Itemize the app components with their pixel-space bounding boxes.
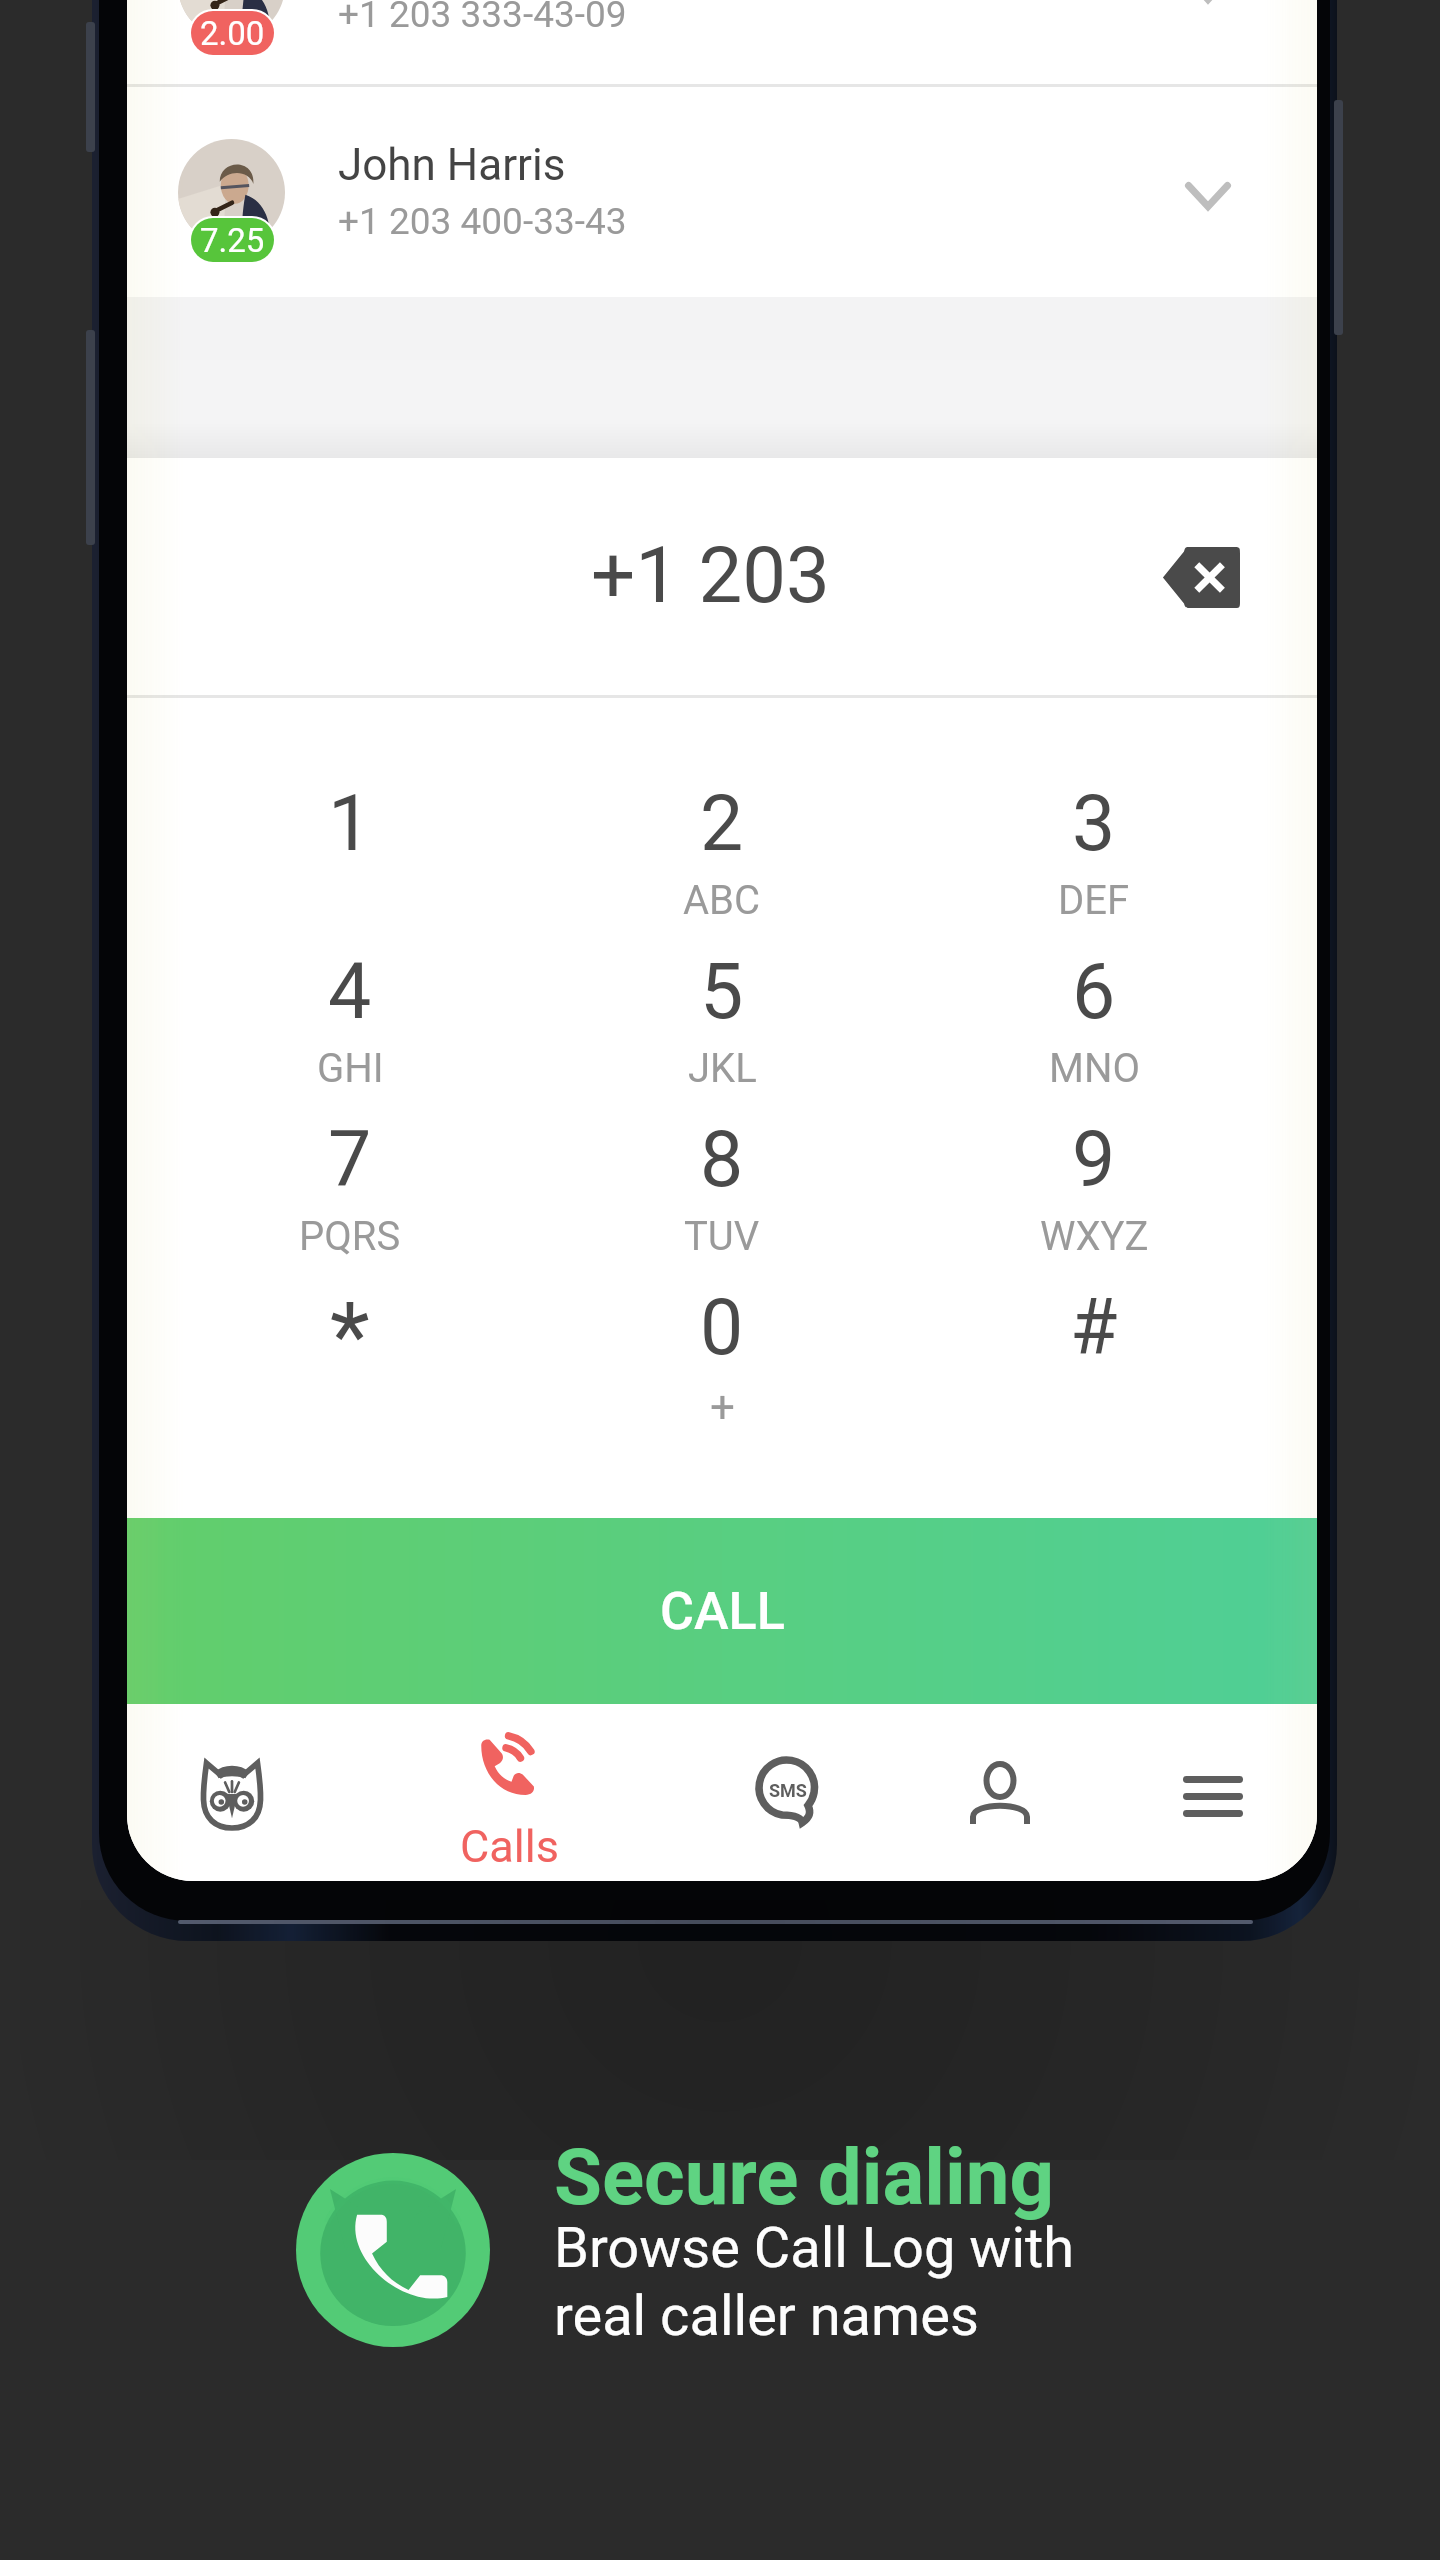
staticText: ABC (683, 877, 761, 924)
button[interactable]: Calls (383, 1704, 635, 1881)
button[interactable]: 8 (536, 1034, 908, 1202)
staticText: 8 (700, 1115, 744, 1205)
button[interactable]: 7.25 (127, 87, 1317, 297)
staticText: MNO (1049, 1045, 1140, 1092)
staticText: 3 (1072, 779, 1116, 869)
staticText: 2 (700, 779, 744, 869)
button[interactable]: 1 (164, 698, 536, 866)
button[interactable]: Contacts (904, 1704, 1096, 1881)
button[interactable]: Backspace (1100, 487, 1300, 667)
button[interactable]: 0 (536, 1202, 908, 1370)
staticText: Secure dialing (554, 2132, 1054, 2223)
button[interactable]: * (164, 1202, 536, 1370)
staticText: 7.25 (200, 221, 265, 260)
button[interactable]: # (908, 1202, 1280, 1370)
button[interactable]: Home (140, 1704, 324, 1881)
staticText: Calls (460, 1820, 559, 1873)
staticText: JKL (688, 1045, 757, 1092)
staticText: 0 (700, 1283, 744, 1373)
staticText: PQRS (299, 1213, 401, 1260)
staticText: +1 203 400-33-43 (338, 200, 627, 243)
staticText: 7 (328, 1115, 372, 1205)
staticText: John Harris (338, 139, 566, 191)
button[interactable]: 4 (164, 866, 536, 1034)
button[interactable]: 9 (908, 1034, 1280, 1202)
button[interactable]: 5 (536, 866, 908, 1034)
staticText: 1 (328, 779, 372, 869)
staticText: # (1070, 1283, 1118, 1373)
staticText: TUV (684, 1213, 760, 1260)
staticText: 6 (1072, 947, 1116, 1037)
staticText: * (330, 1283, 370, 1391)
staticText: SMS (769, 1780, 807, 1801)
staticText: GHI (317, 1045, 384, 1092)
staticText: +1 203 333-43-09 (338, 0, 627, 36)
button[interactable]: 7 (164, 1034, 536, 1202)
staticText: 4 (328, 947, 372, 1037)
button[interactable]: 3 (908, 698, 1280, 866)
staticText: Browse Call Log with real caller names (554, 2215, 1075, 2349)
staticText: DEF (1058, 877, 1130, 924)
staticText: 5 (700, 947, 744, 1037)
staticText: 9 (1072, 1115, 1116, 1205)
staticText: CALL (660, 1581, 785, 1642)
button[interactable]: Messages (694, 1704, 886, 1881)
staticText: 2.00 (200, 14, 265, 53)
button[interactable]: 6 (908, 866, 1280, 1034)
staticText: WXYZ (1040, 1213, 1149, 1260)
staticText: +1 203 (591, 530, 830, 621)
button[interactable]: CALL (127, 1518, 1317, 1704)
button[interactable]: Menu (1117, 1704, 1309, 1881)
button[interactable]: Expand contact (1148, 0, 1268, 49)
button[interactable]: Expand contact (1148, 136, 1268, 256)
staticText: + (710, 1381, 735, 1433)
button[interactable]: 2 (536, 698, 908, 866)
